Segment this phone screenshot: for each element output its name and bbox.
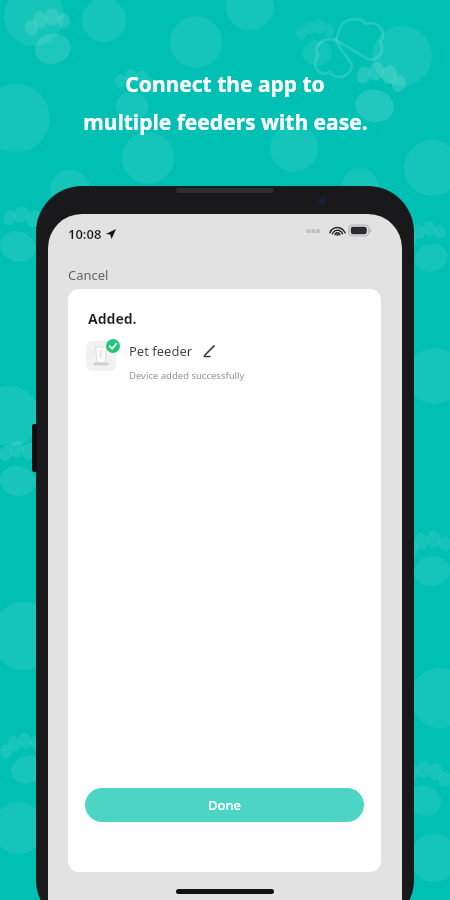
- button[interactable]: Rename device: [201, 343, 217, 359]
- button[interactable]: Pet feeder: [86, 337, 381, 384]
- button[interactable]: Cancel: [56, 260, 121, 290]
- staticText: multiple feeders with ease.: [83, 108, 368, 137]
- staticText: 10:08: [68, 225, 102, 243]
- button[interactable]: Done: [85, 788, 364, 822]
- staticText: Device added successfully: [129, 369, 245, 382]
- staticText: ▪▪▪: [306, 227, 321, 235]
- staticText: Added.: [88, 309, 137, 328]
- staticText: Pet feeder: [129, 342, 193, 360]
- staticText: Cancel: [68, 266, 109, 284]
- staticText: Connect the app to: [125, 70, 325, 99]
- staticText: Done: [208, 796, 242, 814]
